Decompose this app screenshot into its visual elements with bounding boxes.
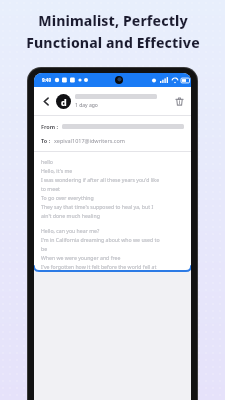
staticText: To : xyxy=(41,137,51,144)
staticText: hello xyxy=(41,158,53,165)
staticText: Functional and Effective xyxy=(26,33,200,52)
staticText: xepival1017@idwriters.com xyxy=(54,137,125,144)
staticText: They say that time's supposed to heal ya… xyxy=(41,203,154,210)
staticText: To go over everything xyxy=(41,194,94,201)
button[interactable]: Back xyxy=(38,93,54,109)
staticText: 1 day ago xyxy=(75,102,98,109)
staticText: I was wondering if after all these years… xyxy=(41,176,160,183)
staticText: Minimalist, Perfectly xyxy=(38,11,188,30)
staticText: Hello, it's me xyxy=(41,167,73,174)
button[interactable]: Delete xyxy=(171,93,187,109)
staticText: d xyxy=(61,96,67,108)
staticText: to meet xyxy=(41,185,60,192)
staticText: be xyxy=(41,245,48,252)
staticText: From : xyxy=(41,123,59,130)
staticText: I've forgotten how it felt before the wo… xyxy=(41,263,157,270)
staticText: Hello, can you hear me? xyxy=(41,227,100,234)
staticText: I'm in California dreaming about who we … xyxy=(41,236,160,243)
staticText: When we were younger and free xyxy=(41,254,121,261)
staticText: ain't done much healing xyxy=(41,212,100,219)
button[interactable]: Sender avatar xyxy=(56,94,71,109)
staticText: 9:49 xyxy=(42,77,51,83)
